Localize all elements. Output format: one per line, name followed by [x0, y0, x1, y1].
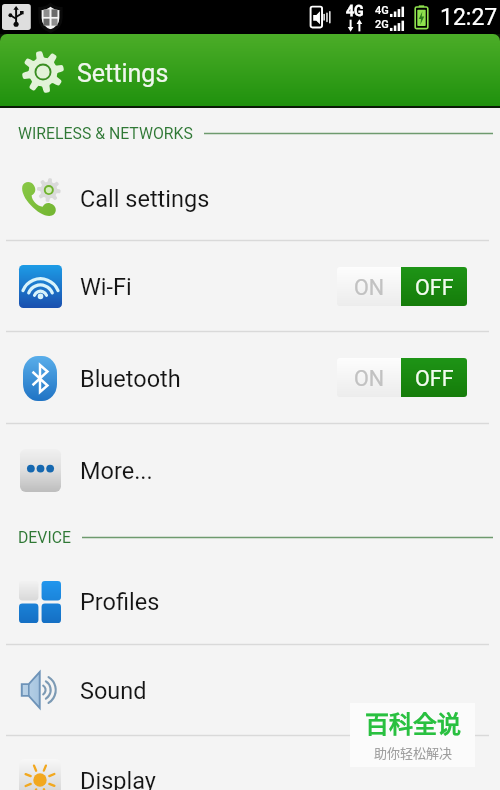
button[interactable]: Sound [0, 645, 500, 735]
staticText: 4G [375, 4, 389, 17]
button[interactable]: Call settings [0, 155, 500, 240]
staticText: More... [80, 457, 153, 485]
staticText: WIRELESS & NETWORKS [18, 124, 193, 143]
staticText: 4G [346, 3, 364, 19]
staticText: Sound [80, 677, 147, 705]
staticText: DEVICE [18, 528, 71, 547]
staticText: 助你轻松解决 [374, 743, 453, 762]
button[interactable]: Toggle off [337, 267, 467, 306]
staticText: 百科全说 [365, 705, 461, 740]
button[interactable]: Settings [0, 34, 500, 108]
staticText: Call settings [80, 185, 210, 213]
button[interactable]: Bluetooth [0, 332, 500, 423]
staticText: ON [354, 275, 385, 300]
button[interactable]: Wi-Fi [0, 241, 500, 331]
staticText: 12:27 [440, 4, 498, 31]
staticText: Wi-Fi [80, 273, 132, 301]
staticText: Profiles [80, 588, 160, 616]
staticText: Settings [77, 59, 169, 88]
staticText: 2G [375, 18, 389, 31]
staticText: Display [80, 767, 156, 790]
button[interactable]: Display [0, 736, 500, 790]
staticText: Bluetooth [80, 365, 181, 393]
button[interactable]: Profiles [0, 558, 500, 644]
staticText: OFF [415, 366, 454, 391]
staticText: OFF [415, 275, 454, 300]
button[interactable]: Toggle off [337, 358, 467, 397]
staticText: ON [354, 366, 385, 391]
button[interactable]: More... [0, 424, 500, 515]
